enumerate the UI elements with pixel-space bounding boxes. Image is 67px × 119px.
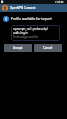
- staticText: auth-login: [13, 31, 28, 35]
- staticText: Technology used file: [13, 35, 38, 39]
- button[interactable]: OpenVPN logo: [0, 4, 67, 12]
- button[interactable]: Cancel: [34, 44, 62, 52]
- other: Information: [3, 16, 9, 22]
- button[interactable]: Accept: [4, 44, 32, 52]
- staticText: Accept: [13, 46, 23, 50]
- other: OpenVPN logo: [2, 5, 8, 11]
- staticText: Cancel: [43, 46, 53, 50]
- staticText: openvpn_us1-yoder.udp/: [13, 27, 48, 31]
- staticText: OpenVPN Connect: [10, 6, 36, 10]
- staticText: Profile available for import: [11, 17, 52, 21]
